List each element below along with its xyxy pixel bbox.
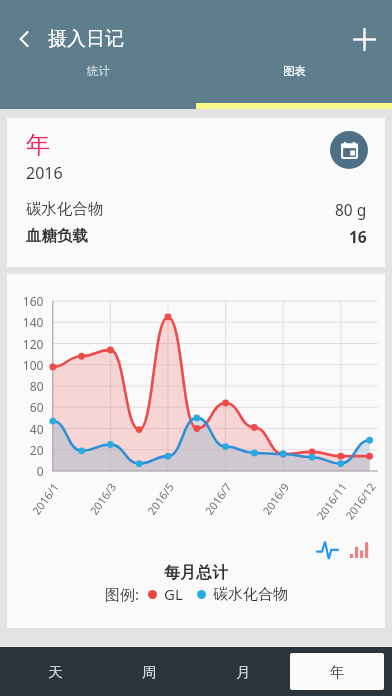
button[interactable]: Calendar xyxy=(330,131,368,169)
button[interactable]: 年 xyxy=(290,653,384,690)
staticText: 摄入日记 xyxy=(48,27,124,51)
staticText: 统计 xyxy=(87,64,110,78)
staticText: 年 xyxy=(26,130,50,160)
button[interactable]: 年 xyxy=(7,118,385,267)
staticText: 碳水化合物 xyxy=(26,199,104,219)
staticText: 每月总计 xyxy=(164,563,228,583)
staticText: 图例: xyxy=(105,584,140,604)
staticText: 16 xyxy=(349,226,367,247)
button[interactable]: 周 xyxy=(102,653,196,690)
button[interactable]: Add xyxy=(336,22,392,56)
staticText: 80 g xyxy=(335,199,367,220)
staticText: 2016 xyxy=(26,162,63,184)
button[interactable]: 天 xyxy=(8,653,102,690)
button[interactable]: 统计 xyxy=(0,56,196,109)
button[interactable]: Line chart xyxy=(314,536,340,562)
button[interactable]: 月 xyxy=(196,653,290,690)
staticText: 月 xyxy=(236,663,251,681)
button[interactable]: Back xyxy=(0,22,48,56)
staticText: 天 xyxy=(48,663,63,681)
button[interactable]: Bar chart xyxy=(346,536,372,562)
staticText: 年 xyxy=(330,663,345,681)
staticText: 血糖负载 xyxy=(26,226,88,246)
button[interactable]: 图表 xyxy=(196,56,392,109)
staticText: 图表 xyxy=(283,64,306,78)
staticText: 周 xyxy=(142,663,157,681)
staticText: 碳水化合物 xyxy=(213,585,288,604)
staticText: GL xyxy=(164,584,183,604)
